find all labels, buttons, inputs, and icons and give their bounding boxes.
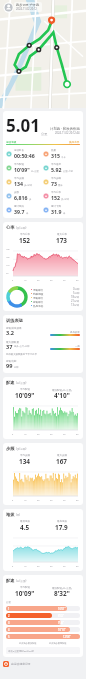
staticText: 39.7	[14, 208, 25, 215]
staticText: 50	[76, 565, 79, 568]
staticText: 4.5	[20, 523, 30, 532]
staticText: 平均配速	[14, 163, 24, 166]
staticText: 本次5公里用时50分46秒	[8, 649, 34, 652]
staticText: 最低海拔	[20, 520, 30, 523]
staticText: 分钟	[14, 366, 19, 369]
staticText: 平均步幅	[51, 177, 61, 180]
button[interactable]: 平均速度	[43, 163, 80, 173]
staticText: 152	[19, 236, 30, 245]
button[interactable]: 热量	[43, 149, 80, 159]
staticText: 热身放松	[33, 304, 44, 307]
staticText: 乳酸阈值	[33, 292, 44, 295]
button[interactable]: 2	[6, 613, 80, 618]
staticText: 您的最大摄氧量处于平均水平	[6, 353, 38, 356]
staticText: 有氧耐力	[33, 300, 44, 303]
button[interactable]: 5.01	[3, 111, 83, 218]
button[interactable]: 累计爬升	[6, 205, 43, 215]
staticText: 提高效果	[70, 331, 80, 334]
staticText: 厘米	[58, 184, 63, 187]
staticText: 有氧训练效果	[6, 326, 22, 329]
staticText: 00:50:46	[14, 152, 35, 159]
staticText: 50	[76, 499, 79, 502]
button[interactable]: 平均步频	[6, 177, 43, 187]
button[interactable]: 平均心率	[43, 191, 80, 201]
staticText: 8'32"	[54, 589, 70, 598]
button[interactable]: 5	[6, 634, 80, 639]
staticText: 70	[6, 272, 9, 275]
staticText: 31.9	[51, 208, 62, 215]
button[interactable]: 平均步幅	[43, 177, 80, 187]
staticText: 10'13"	[58, 628, 66, 632]
staticText: 9'46"	[58, 621, 65, 625]
button[interactable]: 海拔	[3, 509, 83, 571]
button[interactable]: 平均配速	[6, 163, 43, 173]
staticText: 一般	[75, 345, 80, 348]
staticText: 跑步记录·户外跑	[16, 3, 40, 7]
staticText: 20	[37, 433, 40, 436]
staticText: 此次跑步最快配速	[19, 642, 37, 645]
staticText: 12'08"	[63, 635, 71, 639]
staticText: 4	[8, 628, 10, 632]
staticText: 步数	[14, 191, 19, 194]
button[interactable]: 跑步记录·户外跑	[16, 3, 40, 11]
staticText: 平均步频	[20, 454, 30, 457]
staticText: 公里/小时	[63, 170, 74, 173]
staticText: 167	[56, 457, 67, 466]
staticText: 17.9	[55, 523, 68, 532]
staticText: 40	[63, 499, 66, 502]
staticText: 热量	[51, 149, 56, 152]
button[interactable]: 4	[6, 627, 80, 632]
staticText: 无氧耐力	[33, 288, 44, 291]
staticText: 10'01"	[58, 607, 66, 611]
button[interactable]: 运动时长	[6, 149, 43, 159]
staticText: 8'32"	[58, 614, 65, 618]
staticText: 20	[37, 279, 40, 282]
staticText: 0	[12, 279, 14, 282]
staticText: 20	[37, 565, 40, 568]
staticText: 累计爬升	[14, 205, 24, 208]
staticText: 4'10"	[54, 391, 70, 400]
button[interactable]: App 运动健康记录	[3, 661, 83, 667]
staticText: (分/公里)	[16, 381, 27, 385]
staticText: 10	[24, 279, 27, 282]
staticText: 公里	[6, 601, 11, 604]
staticText: 190	[6, 248, 10, 251]
staticText: 30	[50, 499, 53, 502]
button[interactable]: 1	[6, 606, 80, 611]
button[interactable]: 训练表现	[3, 315, 83, 373]
staticText: (米)	[16, 513, 21, 517]
button[interactable]: 累计下降	[43, 205, 80, 215]
staticText: 30	[50, 433, 53, 436]
staticText: 99	[6, 362, 13, 370]
staticText: 5	[8, 635, 10, 639]
button[interactable]: 配速	[3, 377, 83, 439]
staticText: 累计下降	[51, 205, 61, 208]
button[interactable]: 配速	[3, 575, 83, 657]
button[interactable]: 步频	[3, 443, 83, 505]
staticText: 5分钟	[73, 291, 80, 295]
staticText: 平均心率	[51, 191, 61, 194]
staticText: 30	[50, 279, 53, 282]
staticText: 平均速度	[51, 163, 61, 166]
staticText: 平均心率	[20, 233, 30, 236]
button[interactable]: 步数	[6, 191, 43, 201]
staticText: (步/分钟)	[16, 447, 27, 451]
button[interactable]: 心率	[3, 222, 83, 311]
staticText: 73	[51, 180, 57, 187]
staticText: 18分钟	[71, 295, 80, 299]
staticText: 5.92	[51, 166, 62, 173]
staticText: 毫升/公斤/分钟	[14, 345, 30, 348]
button[interactable]: 3	[6, 620, 80, 625]
staticText: 无氧耐力	[33, 296, 44, 299]
staticText: 21分钟	[71, 299, 80, 303]
staticText: 千卡	[61, 156, 66, 159]
staticText: 110	[6, 264, 10, 267]
staticText: 6,816	[14, 194, 28, 201]
staticText: 米	[26, 212, 29, 215]
staticText: 150	[6, 256, 10, 259]
staticText: 分/公里	[31, 170, 39, 173]
staticText: 由运动健康记录	[11, 662, 31, 666]
staticText: 2024-11-02 20:12:44	[55, 131, 80, 135]
staticText: 米	[63, 212, 66, 215]
staticText: 训练表现	[6, 318, 23, 323]
